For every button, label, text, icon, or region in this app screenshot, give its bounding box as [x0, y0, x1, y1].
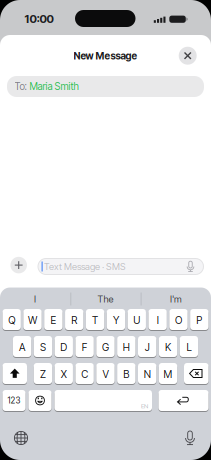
staticText: I: [157, 314, 159, 326]
button[interactable]: K: [159, 336, 177, 358]
button[interactable]: R: [65, 309, 83, 331]
staticText: C: [81, 368, 88, 380]
staticText: D: [60, 341, 67, 353]
button[interactable]: B: [117, 363, 136, 385]
staticText: To:: [14, 80, 26, 92]
staticText: L: [186, 341, 191, 353]
staticText: G: [102, 341, 109, 353]
button[interactable]: I'm: [142, 290, 210, 308]
button[interactable]: N: [138, 363, 156, 385]
staticText: R: [71, 314, 77, 326]
staticText: Q: [8, 314, 15, 326]
staticText: Text Message · SMS: [44, 261, 126, 272]
staticText: Maria Smith: [29, 80, 78, 92]
button[interactable]: Numbers: [2, 390, 25, 412]
button[interactable]: The: [71, 290, 139, 308]
button[interactable]: M: [159, 363, 177, 385]
staticText: H: [123, 341, 130, 353]
button[interactable]: Shift: [2, 363, 27, 385]
button[interactable]: Next keyboard: [10, 427, 31, 448]
button[interactable]: F: [75, 336, 94, 358]
staticText: EN: [141, 402, 148, 410]
button[interactable]: U: [128, 309, 146, 331]
staticText: New Message: [73, 50, 137, 62]
staticText: V: [102, 368, 108, 380]
button[interactable]: Add attachment: [10, 257, 27, 273]
staticText: W: [28, 314, 37, 326]
button[interactable]: Y: [107, 309, 125, 331]
staticText: K: [165, 341, 171, 353]
button[interactable]: Delete: [184, 363, 208, 385]
staticText: I: [34, 293, 36, 305]
staticText: J: [145, 341, 150, 353]
button[interactable]: D: [55, 336, 73, 358]
staticText: I'm: [170, 293, 182, 305]
button[interactable]: J: [138, 336, 156, 358]
button[interactable]: Close: [179, 47, 197, 65]
button[interactable]: I: [148, 309, 167, 331]
button[interactable]: A: [13, 336, 31, 358]
staticText: A: [19, 341, 25, 353]
button[interactable]: Space: [54, 390, 152, 412]
button[interactable]: Text Message: [38, 258, 203, 274]
button[interactable]: E: [44, 309, 63, 331]
button[interactable]: X: [55, 363, 73, 385]
staticText: S: [40, 341, 46, 353]
button[interactable]: C: [75, 363, 94, 385]
button[interactable]: P: [190, 309, 209, 331]
staticText: X: [61, 368, 67, 380]
button[interactable]: Q: [2, 309, 21, 331]
button[interactable]: I: [1, 290, 69, 308]
staticText: 10:00: [24, 12, 53, 26]
staticText: The: [97, 293, 113, 305]
button[interactable]: G: [96, 336, 115, 358]
button[interactable]: H: [117, 336, 136, 358]
staticText: P: [196, 314, 202, 326]
button[interactable]: T: [86, 309, 104, 331]
button[interactable]: Z: [34, 363, 52, 385]
staticText: M: [163, 368, 172, 380]
staticText: U: [133, 314, 140, 326]
button[interactable]: V: [96, 363, 115, 385]
staticText: N: [144, 368, 151, 380]
staticText: Z: [40, 368, 46, 380]
staticText: T: [92, 314, 98, 326]
staticText: O: [175, 314, 182, 326]
staticText: B: [123, 368, 129, 380]
staticText: E: [50, 314, 56, 326]
staticText: F: [82, 341, 88, 353]
button[interactable]: Emoji: [28, 390, 51, 412]
button[interactable]: Return: [158, 390, 208, 412]
button[interactable]: S: [34, 336, 52, 358]
button[interactable]: Dictation: [179, 429, 200, 450]
button[interactable]: To:: [7, 76, 204, 97]
staticText: 123: [7, 395, 20, 406]
button[interactable]: L: [180, 336, 198, 358]
button[interactable]: W: [23, 309, 42, 331]
button[interactable]: O: [169, 309, 188, 331]
staticText: Y: [113, 314, 119, 326]
